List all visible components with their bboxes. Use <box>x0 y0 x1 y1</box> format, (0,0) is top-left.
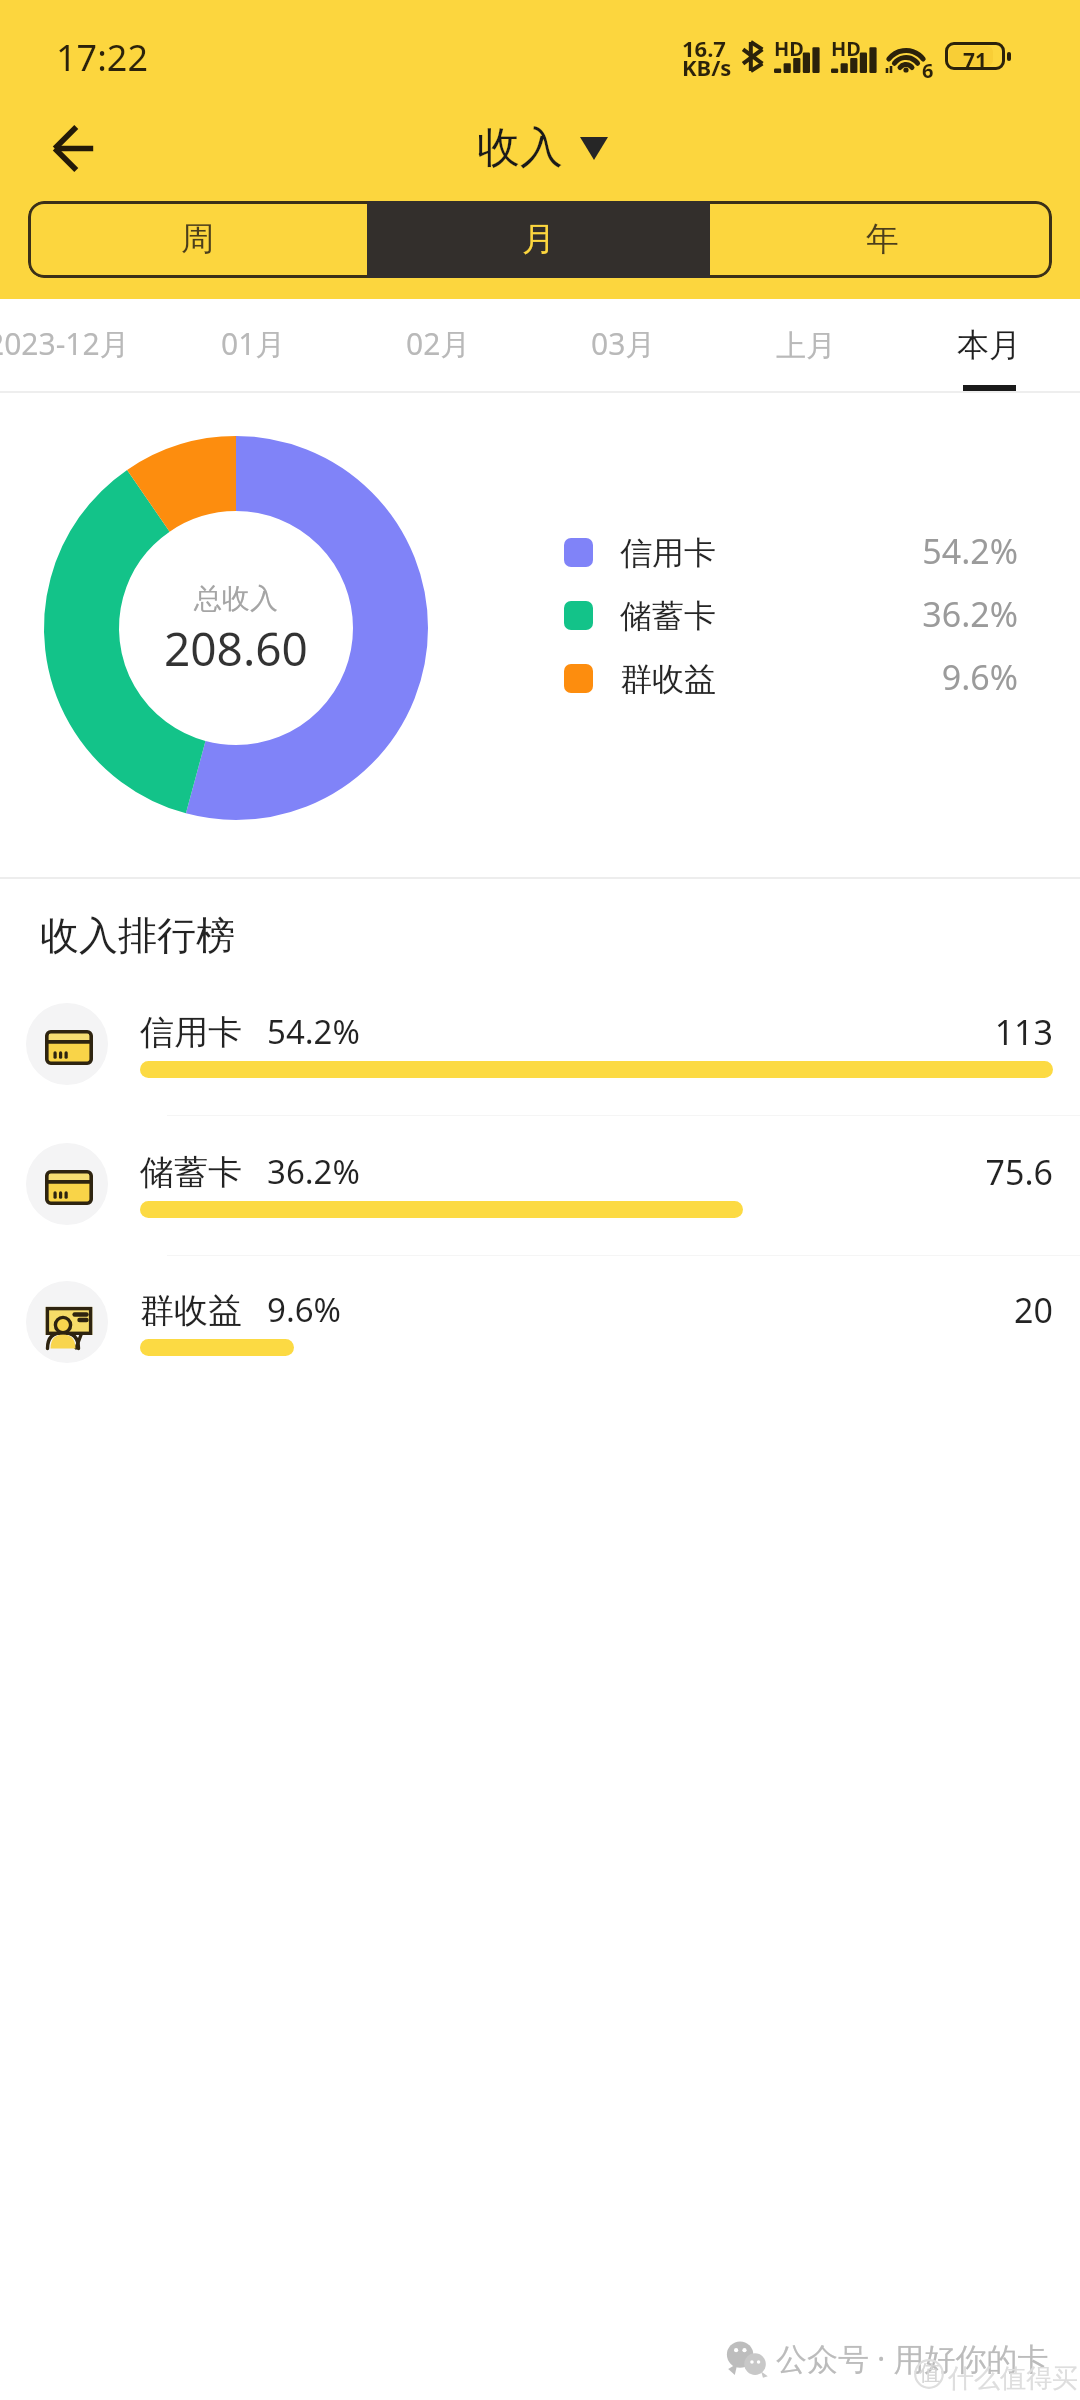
staticText: 54.2% <box>267 1009 360 1054</box>
staticText: 20 <box>0 1287 1053 1333</box>
staticText: 群收益 <box>140 1289 242 1332</box>
staticText: 02月 <box>406 323 471 364</box>
button[interactable]: 群收益 <box>564 648 1014 709</box>
button[interactable]: 周 <box>28 201 367 278</box>
staticText: 群收益 <box>620 659 716 699</box>
staticText: 03月 <box>591 323 656 364</box>
staticText: 36.2% <box>568 591 1018 637</box>
button[interactable]: 上月 <box>714 299 898 392</box>
staticText: 周 <box>181 218 214 260</box>
button[interactable]: 收入 <box>455 110 630 186</box>
staticText: 75.6 <box>0 1149 1053 1195</box>
staticText: 信用卡 <box>620 533 716 573</box>
button[interactable]: 月 <box>367 201 710 278</box>
button[interactable]: 2023-12月 <box>0 299 150 392</box>
staticText: 9.6% <box>267 1287 342 1332</box>
staticText: 9.6% <box>568 654 1018 700</box>
button[interactable]: 信用卡 <box>564 522 1014 583</box>
staticText: 信用卡 <box>140 1011 242 1054</box>
staticText: 月 <box>522 218 555 260</box>
staticText: 01月 <box>221 323 286 364</box>
staticText: 储蓄卡 <box>140 1151 242 1194</box>
button[interactable]: 年 <box>713 201 1052 278</box>
button[interactable]: 本月 <box>897 299 1080 392</box>
button[interactable]: Back <box>29 104 118 193</box>
staticText: 6 <box>922 57 934 84</box>
button[interactable]: 储蓄卡 <box>0 1140 1080 1280</box>
staticText: 208.60 <box>164 617 308 680</box>
staticText: HD <box>831 35 861 62</box>
staticText: 71 <box>963 46 988 75</box>
button[interactable]: 01月 <box>161 299 345 392</box>
staticText: 总收入 <box>194 581 278 616</box>
staticText: 2023-12月 <box>0 323 130 364</box>
staticText: 什么值得买 <box>948 2362 1078 2395</box>
button[interactable]: 信用卡 <box>0 1000 1080 1140</box>
staticText: 公众号 · 用好你的卡 <box>776 2337 1049 2379</box>
staticText: 值 <box>919 2360 940 2386</box>
staticText: HD <box>774 35 804 62</box>
staticText: 17:22 <box>56 33 149 82</box>
button[interactable]: 储蓄卡 <box>564 585 1014 646</box>
button[interactable]: 02月 <box>346 299 530 392</box>
button[interactable]: 群收益 <box>0 1278 1080 1418</box>
staticText: 收入 <box>477 121 563 175</box>
staticText: KB/s <box>682 52 732 82</box>
button[interactable]: 03月 <box>531 299 715 392</box>
staticText: 16.7 <box>682 33 726 63</box>
staticText: 上月 <box>776 327 836 365</box>
staticText: 本月 <box>957 325 1021 365</box>
staticText: 年 <box>866 218 899 260</box>
staticText: 收入排行榜 <box>40 911 235 960</box>
staticText: 113 <box>0 1009 1053 1055</box>
staticText: 储蓄卡 <box>620 596 716 636</box>
staticText: 54.2% <box>568 528 1018 574</box>
staticText: 36.2% <box>267 1149 360 1194</box>
